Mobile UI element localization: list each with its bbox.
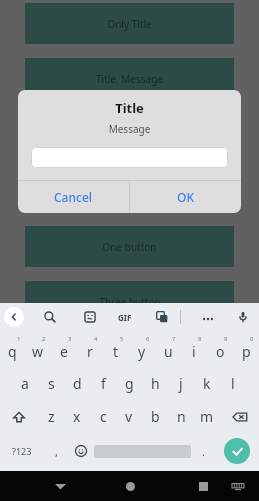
button[interactable]: b — [142, 400, 168, 433]
staticText: 1 — [17, 335, 21, 343]
staticText: n — [177, 407, 186, 426]
button[interactable]: Title, Message — [25, 58, 234, 99]
staticText: 6 — [146, 335, 150, 343]
staticText: . — [202, 444, 205, 459]
button[interactable]: h — [142, 367, 168, 400]
staticText: 3 — [68, 335, 72, 343]
button[interactable]: t — [103, 333, 129, 367]
button[interactable]: ?123 — [0, 433, 44, 469]
button[interactable]: o — [207, 333, 233, 367]
button[interactable]: GIF — [115, 307, 135, 327]
staticText: w — [32, 342, 44, 361]
button[interactable]: d — [64, 367, 90, 400]
staticText: Title — [18, 99, 241, 117]
staticText: c — [100, 407, 107, 426]
button[interactable]: Stickers — [80, 307, 100, 327]
staticText: Title, Message — [96, 72, 163, 86]
staticText: b — [151, 407, 160, 426]
staticText: 4 — [94, 335, 98, 343]
staticText: x — [73, 407, 81, 426]
staticText: , — [55, 444, 58, 459]
button[interactable]: k — [194, 367, 220, 400]
button[interactable]: e — [51, 333, 77, 367]
staticText: t — [113, 342, 119, 361]
staticText: u — [164, 342, 173, 361]
button[interactable]: Back — [4, 307, 24, 327]
button[interactable]: OK — [130, 181, 241, 213]
button[interactable]: One button — [25, 226, 234, 267]
staticText: l — [231, 374, 235, 393]
staticText: m — [200, 407, 214, 426]
staticText: q — [8, 342, 17, 361]
staticText: Message — [18, 122, 241, 136]
staticText: 8 — [198, 335, 202, 343]
button[interactable]: n — [168, 400, 194, 433]
staticText: ?123 — [12, 445, 32, 457]
staticText: 9 — [224, 335, 228, 343]
staticText: s — [48, 374, 55, 393]
staticText: 0 — [250, 335, 254, 343]
button[interactable]: Recent apps — [188, 471, 218, 501]
staticText: Three button — [99, 295, 161, 309]
button[interactable]: x — [64, 400, 90, 433]
button[interactable]: Keyboard — [225, 471, 251, 501]
button[interactable]: q — [0, 333, 25, 367]
staticText: i — [192, 342, 196, 361]
button[interactable]: z — [38, 400, 64, 433]
button[interactable]: s — [38, 367, 64, 400]
button[interactable]: Translate — [152, 307, 172, 327]
staticText: z — [48, 407, 55, 426]
staticText: 7 — [172, 335, 176, 343]
staticText: o — [216, 342, 225, 361]
staticText: a — [21, 374, 29, 393]
button[interactable]: , — [44, 433, 68, 469]
button[interactable]: u — [155, 333, 181, 367]
button[interactable] — [31, 147, 228, 168]
button[interactable]: a — [12, 367, 38, 400]
button[interactable]: y — [129, 333, 155, 367]
staticText: p — [242, 342, 251, 361]
staticText: h — [151, 374, 160, 393]
staticText: e — [60, 342, 68, 361]
staticText: d — [73, 374, 82, 393]
staticText: f — [101, 374, 106, 393]
button[interactable]: More options — [196, 307, 220, 331]
staticText: r — [87, 342, 93, 361]
button[interactable]: w — [25, 333, 51, 367]
staticText: Cancel — [54, 189, 93, 205]
staticText: Only Title — [107, 17, 152, 31]
button[interactable]: Cancel — [18, 181, 129, 213]
button[interactable]: r — [77, 333, 103, 367]
button[interactable]: g — [116, 367, 142, 400]
staticText: g — [125, 374, 134, 393]
button[interactable]: Search — [40, 307, 60, 327]
staticText: 2 — [42, 335, 46, 343]
staticText: y — [138, 342, 146, 361]
staticText: GIF — [118, 312, 132, 323]
button[interactable]: f — [90, 367, 116, 400]
button[interactable]: Shift — [0, 400, 38, 433]
button[interactable]: p — [233, 333, 259, 367]
button[interactable]: i — [181, 333, 207, 367]
button[interactable]: Emoji — [68, 433, 94, 469]
button[interactable]: l — [220, 367, 246, 400]
button[interactable]: Enter — [224, 438, 250, 464]
button[interactable]: v — [116, 400, 142, 433]
staticText: OK — [177, 189, 194, 205]
button[interactable]: c — [90, 400, 116, 433]
staticText: v — [125, 407, 133, 426]
button[interactable]: Three button — [25, 281, 234, 322]
button[interactable]: Backspace — [220, 400, 259, 433]
staticText: 5 — [120, 335, 124, 343]
staticText: k — [203, 374, 211, 393]
button[interactable]: m — [194, 400, 220, 433]
staticText: One button — [102, 240, 157, 254]
button[interactable]: Voice input — [233, 307, 253, 327]
button[interactable]: j — [168, 367, 194, 400]
button[interactable]: Back — [45, 471, 75, 501]
button[interactable]: Home — [115, 471, 145, 501]
button[interactable]: . — [191, 433, 215, 469]
staticText: j — [179, 374, 183, 393]
